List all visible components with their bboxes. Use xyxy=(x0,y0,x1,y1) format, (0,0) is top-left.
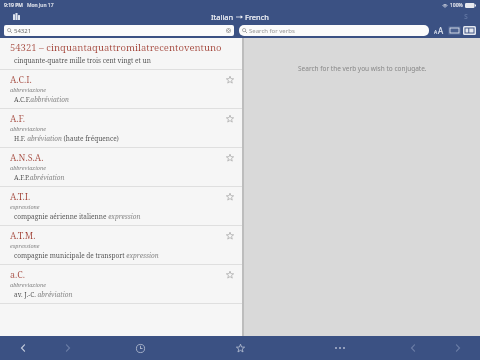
staticText: Italian xyxy=(211,12,234,22)
staticText: Mon Jun 17 xyxy=(27,2,54,9)
button[interactable]: A.C.I. xyxy=(0,70,242,108)
button[interactable]: Text size xyxy=(433,25,445,36)
button[interactable]: Forward xyxy=(45,336,90,360)
staticText: A.N.S.A. xyxy=(10,151,44,163)
staticText: compagnie aérienne italienne expression xyxy=(14,212,141,221)
staticText: compagnie municipale de transport expres… xyxy=(14,251,159,260)
staticText: abbreviazione xyxy=(10,86,47,93)
button[interactable]: Search for verbs xyxy=(239,25,429,36)
button[interactable]: 54321 xyxy=(4,25,234,36)
button[interactable]: Next xyxy=(435,336,480,360)
staticText: A.T.M. xyxy=(10,229,36,241)
staticText: A.F.P.abréviation xyxy=(14,173,65,182)
staticText: espressione xyxy=(10,203,40,210)
button[interactable]: History xyxy=(90,336,190,360)
staticText: Search for verbs xyxy=(249,27,295,35)
button[interactable]: A.T.I. xyxy=(0,187,242,225)
staticText: 54321 – cinquantaquattromilatrecentovent… xyxy=(10,41,222,54)
staticText: 54321 xyxy=(14,27,32,35)
button[interactable]: A.T.M. xyxy=(0,226,242,264)
staticText: A.T.I. xyxy=(10,190,31,202)
staticText: A xyxy=(434,29,438,36)
button[interactable]: More xyxy=(290,336,390,360)
staticText: S xyxy=(464,12,468,22)
button[interactable]: A.N.S.A. xyxy=(0,148,242,186)
staticText: abbreviazione xyxy=(10,164,47,171)
staticText: A.F. xyxy=(10,112,26,124)
staticText: 9:19 PM xyxy=(4,2,23,9)
staticText: A xyxy=(438,25,444,36)
button[interactable]: Settings xyxy=(460,11,472,22)
staticText: abbreviazione xyxy=(10,125,47,132)
staticText: abbreviazione xyxy=(10,281,47,288)
staticText: a.C. xyxy=(10,268,25,280)
staticText: 100% xyxy=(450,2,463,9)
staticText: French xyxy=(245,12,269,22)
staticText: cinquante-quatre mille trois cent vingt … xyxy=(14,56,151,65)
button[interactable]: Full view xyxy=(448,26,461,35)
staticText: H.F. abréviation (haute fréquence) xyxy=(14,134,119,143)
staticText: A.C.F.abbréviation xyxy=(14,95,69,104)
button[interactable]: Library xyxy=(10,11,22,22)
button[interactable]: Favorites xyxy=(190,336,290,360)
button[interactable]: Previous xyxy=(390,336,435,360)
button[interactable]: A.F. xyxy=(0,109,242,147)
button[interactable]: Split view xyxy=(463,26,476,35)
staticText: Search for the verb you wish to conjugat… xyxy=(298,64,427,73)
staticText: av. J.-C. abréviation xyxy=(14,290,73,299)
button[interactable]: a.C. xyxy=(0,265,242,303)
button[interactable]: 54321 – cinquantaquattromilatrecentovent… xyxy=(0,38,242,69)
button[interactable]: Back xyxy=(0,336,45,360)
staticText: espressione xyxy=(10,242,40,249)
staticText: A.C.I. xyxy=(10,73,32,85)
